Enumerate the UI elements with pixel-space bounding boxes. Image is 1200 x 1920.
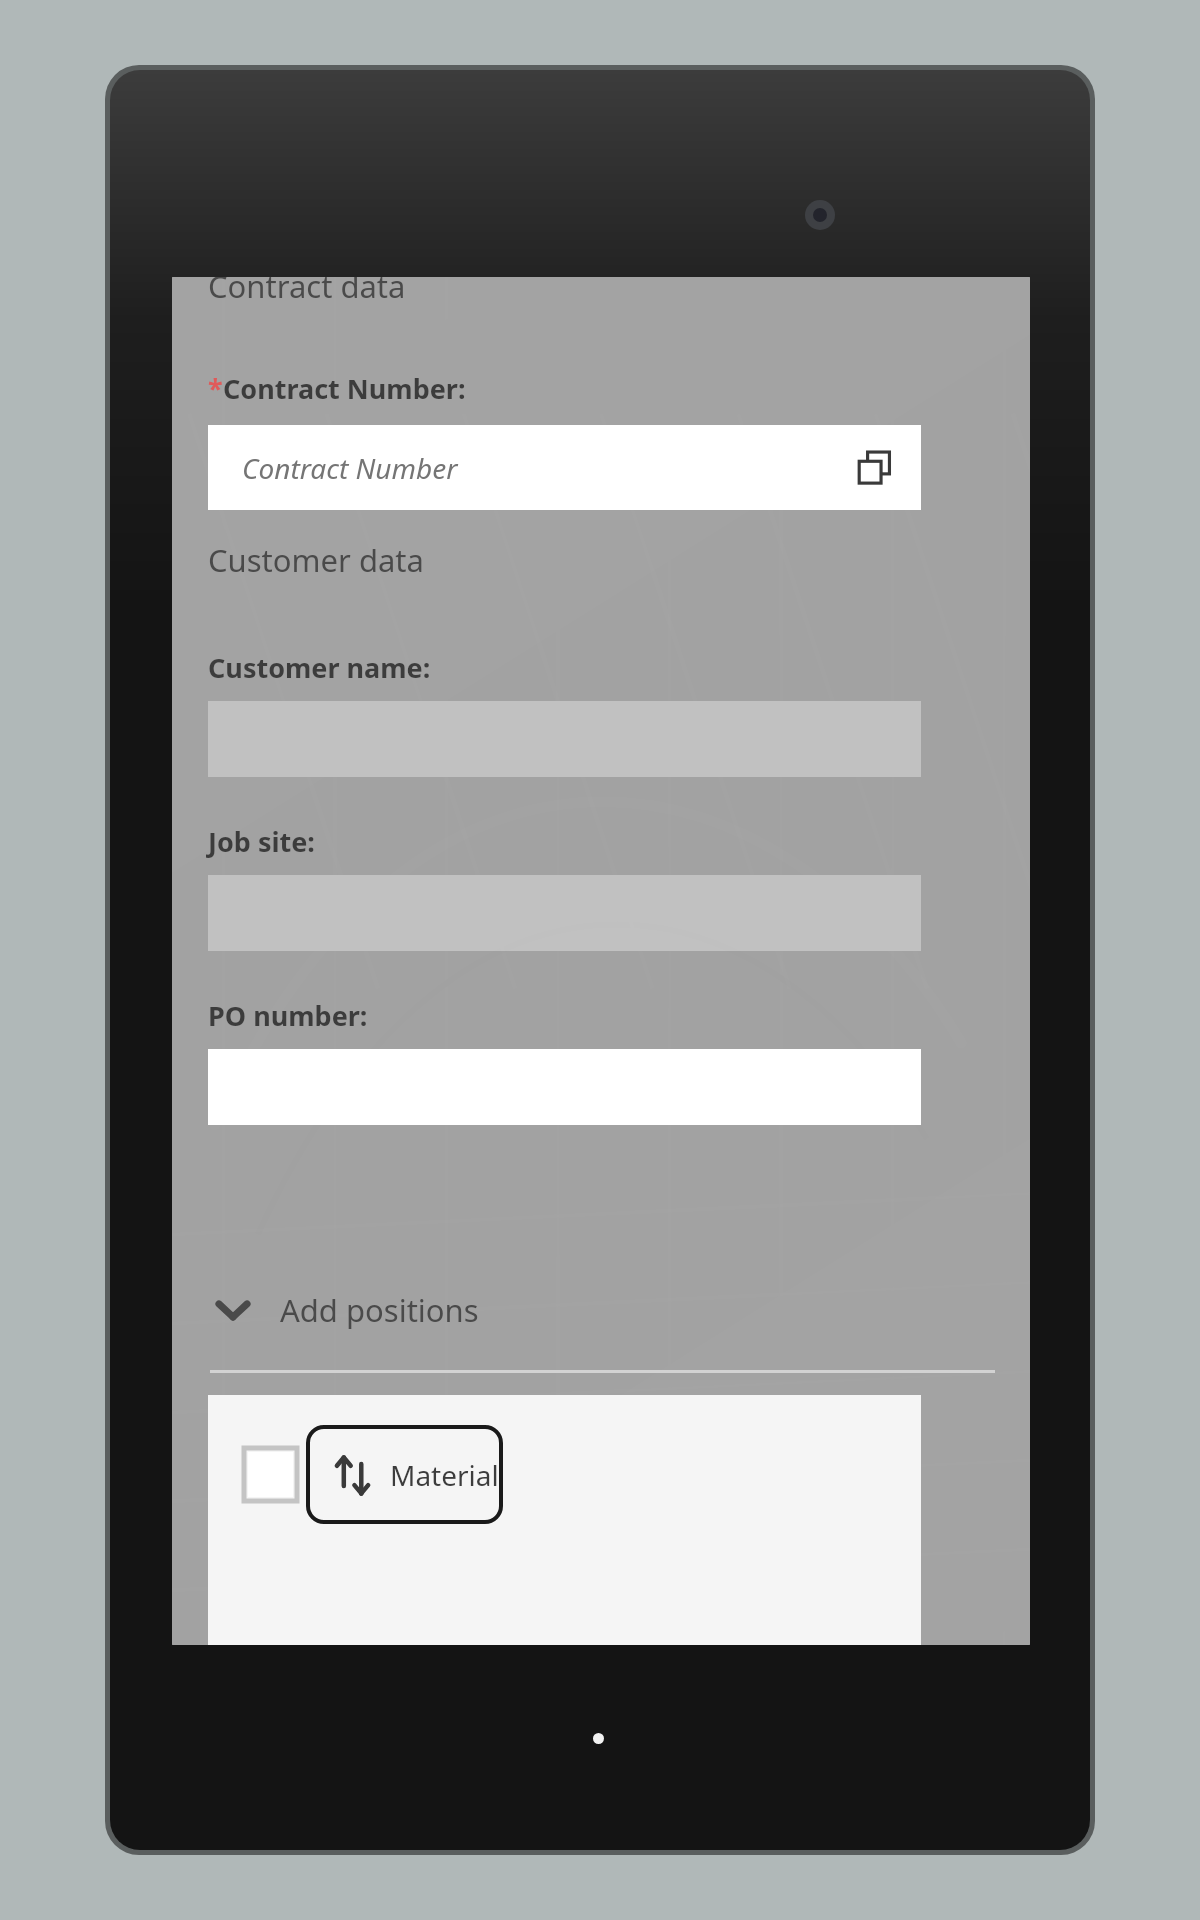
button[interactable]: Contract Number xyxy=(208,425,921,510)
staticText: Material xyxy=(390,1456,499,1494)
staticText: PO number: xyxy=(208,997,368,1034)
button[interactable]: Material xyxy=(308,1427,501,1522)
button[interactable]: Scan contract number xyxy=(851,443,901,493)
staticText: Contract Number: xyxy=(223,370,466,407)
staticText: * xyxy=(208,370,223,407)
staticText: Customer name: xyxy=(208,649,431,686)
staticText: Contract Number xyxy=(242,449,458,487)
staticText: Add positions xyxy=(280,1289,479,1331)
staticText: Job site: xyxy=(208,823,315,860)
button[interactable]: Select position xyxy=(244,1448,297,1501)
button[interactable]: Add positions xyxy=(202,1279,479,1341)
staticText: Contract data xyxy=(208,277,406,307)
staticText: Customer data xyxy=(208,539,424,581)
